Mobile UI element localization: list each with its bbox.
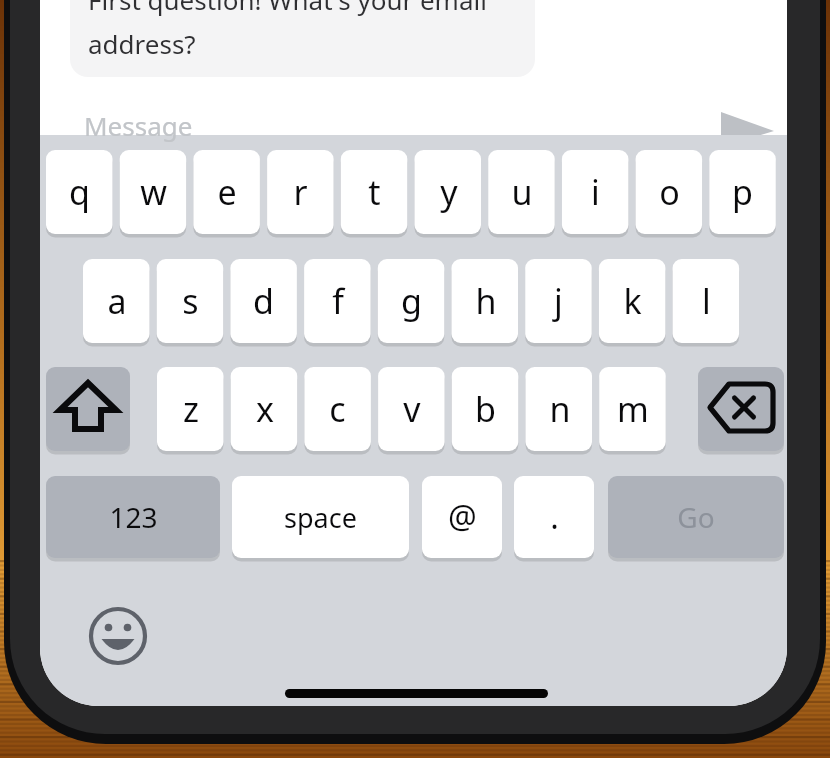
button[interactable]: 123: [46, 476, 220, 558]
staticText: o: [659, 169, 680, 215]
staticText: e: [217, 169, 237, 215]
staticText: p: [732, 169, 753, 215]
staticText: r: [293, 169, 308, 215]
staticText: Message: [84, 108, 193, 143]
button[interactable]: c: [304, 367, 371, 451]
button[interactable]: x: [231, 367, 298, 451]
button[interactable]: z: [157, 367, 224, 451]
staticText: First question! What's your email addres…: [88, 0, 487, 61]
button[interactable]: l: [673, 259, 740, 343]
button[interactable]: .: [514, 476, 594, 558]
staticText: u: [511, 169, 533, 215]
button[interactable]: j: [525, 259, 592, 343]
staticText: Go: [677, 498, 715, 536]
staticText: f: [332, 278, 344, 324]
button[interactable]: o: [636, 150, 703, 234]
button[interactable]: i: [562, 150, 629, 234]
staticText: h: [475, 278, 497, 324]
staticText: i: [591, 169, 600, 215]
staticText: v: [403, 386, 421, 432]
button[interactable]: r: [267, 150, 334, 234]
staticText: m: [617, 386, 649, 432]
staticText: x: [256, 386, 274, 432]
button[interactable]: p: [709, 150, 776, 234]
staticText: t: [368, 169, 381, 215]
button[interactable]: w: [120, 150, 187, 234]
staticText: s: [182, 278, 199, 324]
button[interactable]: Shift: [46, 367, 130, 451]
button[interactable]: Send: [710, 100, 786, 156]
staticText: g: [401, 278, 422, 324]
button[interactable]: m: [599, 367, 666, 451]
button[interactable]: Backspace: [698, 367, 784, 451]
staticText: w: [140, 169, 167, 215]
staticText: .: [550, 495, 559, 539]
staticText: 123: [109, 498, 158, 536]
staticText: space: [284, 499, 357, 536]
staticText: l: [702, 278, 711, 324]
button[interactable]: h: [452, 259, 519, 343]
button[interactable]: Message: [84, 108, 484, 148]
staticText: y: [440, 169, 458, 215]
button[interactable]: d: [230, 259, 297, 343]
button[interactable]: g: [378, 259, 445, 343]
button[interactable]: u: [488, 150, 555, 234]
button[interactable]: t: [341, 150, 408, 234]
button[interactable]: q: [46, 150, 113, 234]
staticText: b: [475, 386, 496, 432]
staticText: q: [69, 169, 90, 215]
button[interactable]: b: [452, 367, 519, 451]
button[interactable]: Emoji: [91, 609, 147, 665]
button[interactable]: @: [422, 476, 502, 558]
button[interactable]: s: [157, 259, 224, 343]
button[interactable]: f: [304, 259, 371, 343]
button[interactable]: n: [526, 367, 593, 451]
button[interactable]: space: [232, 476, 409, 558]
button[interactable]: Go: [608, 476, 784, 558]
button[interactable]: k: [599, 259, 666, 343]
staticText: n: [549, 386, 571, 432]
staticText: c: [329, 386, 346, 432]
button[interactable]: v: [378, 367, 445, 451]
staticText: z: [183, 386, 199, 432]
button[interactable]: e: [193, 150, 260, 234]
staticText: j: [554, 278, 563, 324]
staticText: a: [107, 278, 127, 324]
staticText: k: [623, 278, 642, 324]
button[interactable]: a: [83, 259, 150, 343]
staticText: d: [253, 278, 274, 324]
staticText: @: [448, 495, 477, 539]
button[interactable]: y: [415, 150, 482, 234]
